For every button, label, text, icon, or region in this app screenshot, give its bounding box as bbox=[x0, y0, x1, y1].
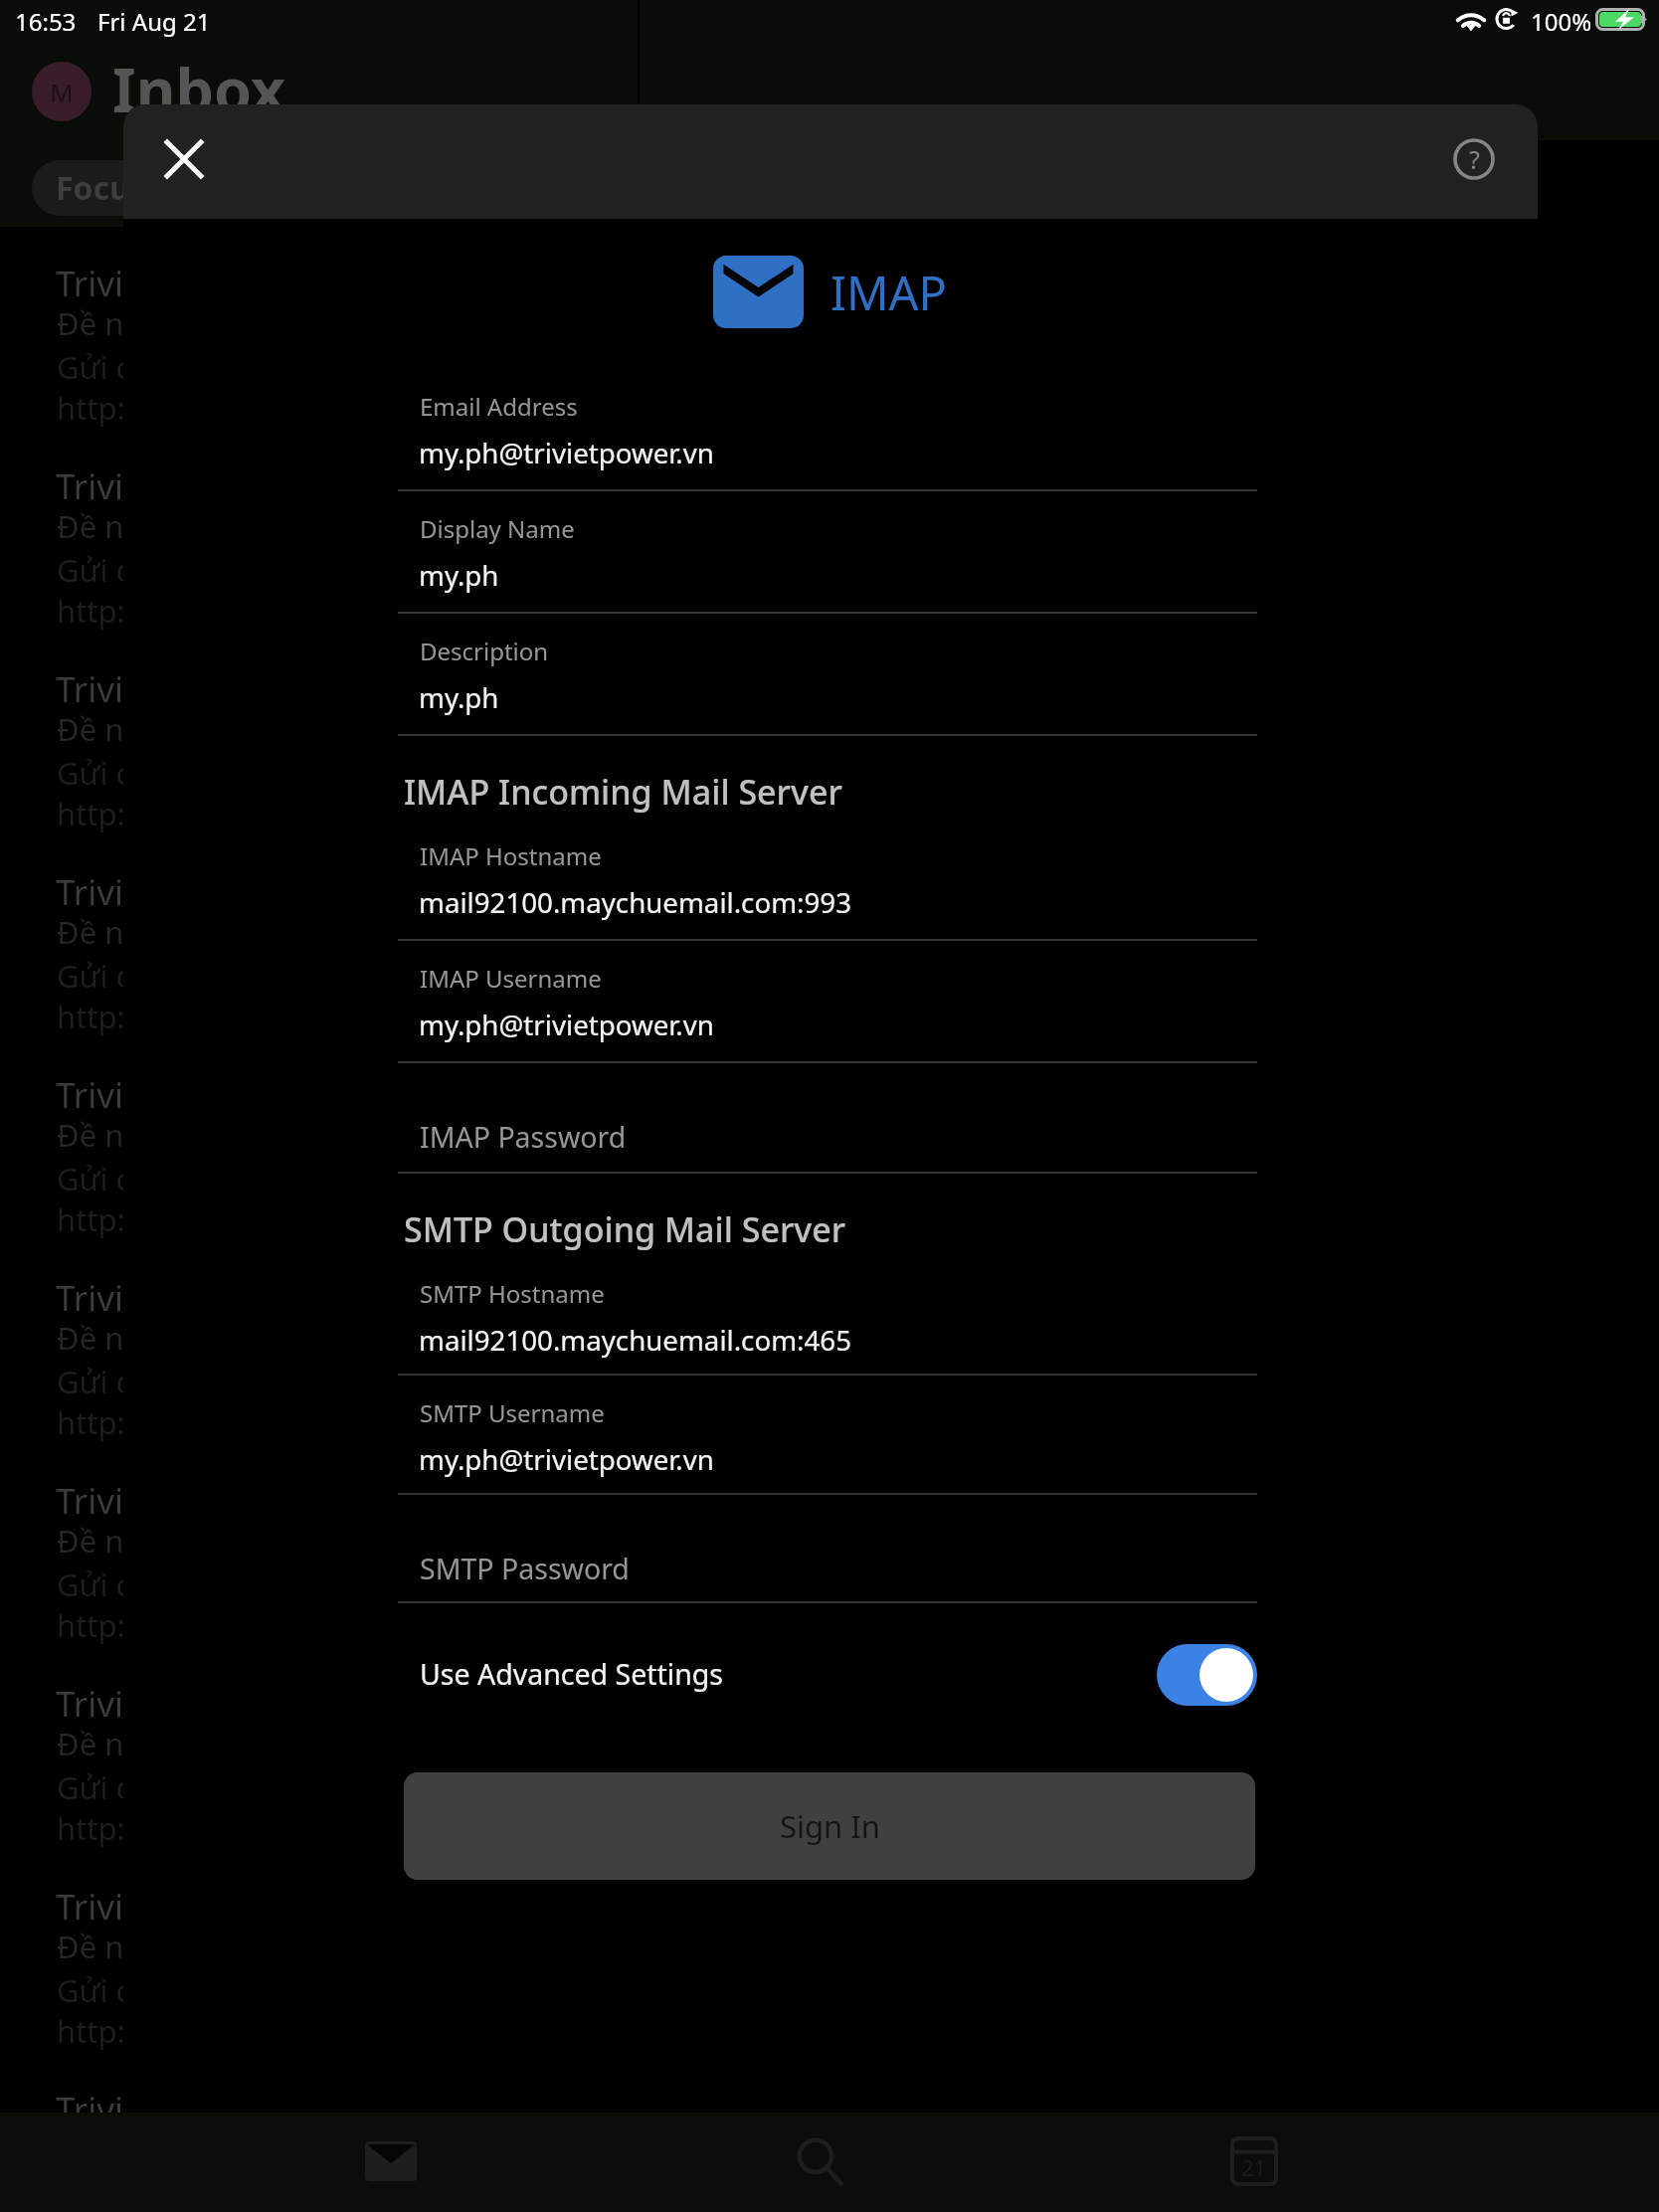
staticText: Gửi các đối tác, Quý công ty bbox=[57, 1564, 458, 1605]
button[interactable]: SMTP Hostname bbox=[398, 1256, 1257, 1374]
staticText: Trivietpower bbox=[56, 462, 260, 510]
button[interactable]: Focused bbox=[32, 160, 253, 216]
staticText: Trivietpower bbox=[56, 1477, 260, 1525]
staticText: http://trivietpower.vn bbox=[57, 387, 362, 429]
staticText: Trivietpower bbox=[56, 665, 260, 713]
staticText: http://trivietpower.vn bbox=[57, 793, 362, 834]
staticText: Đề nghị báo giá thiết bị điện bbox=[57, 1926, 466, 1967]
button[interactable]: SMTP Username bbox=[398, 1376, 1257, 1493]
staticText: http://trivietpower.vn bbox=[57, 590, 362, 632]
staticText: my.ph@trivietpower.vn bbox=[419, 1440, 714, 1478]
staticText: http://trivietpower.vn bbox=[57, 1401, 362, 1443]
staticText: Display Name bbox=[420, 512, 575, 545]
staticText: SMTP Hostname bbox=[420, 1277, 605, 1310]
staticText: Đề nghị báo giá thiết bị điện bbox=[57, 1520, 466, 1562]
staticText: Đề nghị báo giá thiết bị điện bbox=[57, 911, 466, 953]
staticText: Trivietpower bbox=[56, 260, 260, 307]
staticText: M bbox=[50, 75, 74, 109]
staticText: http://trivietpower.vn bbox=[57, 996, 362, 1037]
staticText: 16:53 bbox=[15, 5, 77, 38]
staticText: Trivietpower bbox=[56, 1883, 260, 1931]
staticText: Trivietpower bbox=[56, 1680, 260, 1728]
staticText: my.ph@trivietpower.vn bbox=[419, 1006, 714, 1043]
staticText: Đề nghị báo giá thiết bị điện bbox=[57, 505, 466, 547]
button[interactable]: Help bbox=[1438, 123, 1510, 195]
staticText: Focused bbox=[56, 166, 186, 210]
staticText: Sign In bbox=[780, 1805, 880, 1847]
button[interactable]: SMTP Password bbox=[398, 1495, 1257, 1601]
staticText: Đề nghị báo giá thiết bị điện bbox=[57, 1723, 466, 1764]
staticText: mail92100.maychuemail.com:465 bbox=[419, 1321, 851, 1359]
button[interactable]: Calendar bbox=[1199, 2107, 1309, 2212]
button[interactable]: Mail bbox=[336, 2107, 446, 2212]
staticText: Gửi các đối tác, Quý công ty bbox=[57, 1969, 458, 2011]
staticText: Trivietpower bbox=[56, 868, 260, 916]
staticText: Đề nghị báo giá thiết bị điện bbox=[57, 708, 466, 750]
staticText: http://trivietpower.vn bbox=[57, 1604, 362, 1646]
staticText: Gửi các đối tác, Quý công ty bbox=[57, 752, 458, 794]
button[interactable]: Close bbox=[148, 123, 220, 195]
staticText: Gửi các đối tác, Quý công ty bbox=[57, 346, 458, 388]
staticText: IMAP Hostname bbox=[420, 839, 602, 872]
button[interactable]: IMAP Hostname bbox=[398, 819, 1257, 939]
staticText: Đề nghị báo giá thiết bị điện bbox=[57, 2128, 466, 2170]
staticText: Gửi các đối tác, Quý công ty bbox=[57, 549, 458, 591]
staticText: IMAP Password bbox=[420, 1118, 627, 1157]
staticText: Trivietpower bbox=[56, 1274, 260, 1322]
staticText: http://trivietpower.vn bbox=[57, 2010, 362, 2052]
button[interactable]: Description bbox=[398, 614, 1257, 734]
staticText: Đề nghị báo giá thiết bị điện bbox=[57, 302, 466, 344]
staticText: Đề nghị báo giá thiết bị điện bbox=[57, 1114, 466, 1156]
staticText: Gửi các đối tác, Quý công ty bbox=[57, 2172, 458, 2212]
staticText: Gửi các đối tác, Quý công ty bbox=[57, 1158, 458, 1199]
button[interactable]: Display Name bbox=[398, 491, 1257, 612]
staticText: Email Address bbox=[420, 390, 578, 423]
staticText: IMAP Incoming Mail Server bbox=[404, 769, 842, 815]
staticText: mail92100.maychuemail.com:993 bbox=[419, 883, 851, 921]
staticText: 21 bbox=[1241, 2152, 1267, 2182]
staticText: http://trivietpower.vn bbox=[57, 1807, 362, 1849]
button[interactable]: Use Advanced Settings toggle bbox=[1157, 1644, 1257, 1706]
staticText: SMTP Outgoing Mail Server bbox=[404, 1206, 846, 1252]
staticText: ? bbox=[1469, 142, 1480, 176]
staticText: my.ph@trivietpower.vn bbox=[419, 434, 714, 471]
staticText: Gửi các đối tác, Quý công ty bbox=[57, 1766, 458, 1808]
staticText: Trivietpower bbox=[56, 1071, 260, 1119]
staticText: Trivietpower bbox=[56, 2086, 260, 2133]
staticText: IMAP Username bbox=[420, 962, 602, 995]
button[interactable]: Search bbox=[765, 2107, 874, 2212]
staticText: Fri Aug 21 bbox=[97, 5, 211, 38]
staticText: Description bbox=[420, 635, 549, 667]
button[interactable]: IMAP Password bbox=[398, 1063, 1257, 1172]
staticText: Inbox bbox=[112, 48, 286, 130]
staticText: 100% bbox=[1531, 5, 1592, 38]
staticText: SMTP Password bbox=[420, 1550, 630, 1588]
button[interactable]: IMAP Username bbox=[398, 941, 1257, 1061]
button[interactable]: Use Advanced Settings bbox=[398, 1603, 1257, 1746]
staticText: SMTP Username bbox=[420, 1396, 605, 1429]
staticText: my.ph bbox=[419, 678, 499, 716]
staticText: Đề nghị báo giá thiết bị điện bbox=[57, 1317, 466, 1359]
staticText: Gửi các đối tác, Quý công ty bbox=[57, 1361, 458, 1402]
button[interactable]: Email Address bbox=[398, 369, 1257, 489]
staticText: Use Advanced Settings bbox=[420, 1655, 723, 1694]
staticText: IMAP bbox=[830, 261, 948, 324]
staticText: my.ph bbox=[419, 556, 499, 594]
button[interactable]: Sign In bbox=[404, 1772, 1255, 1880]
staticText: http://trivietpower.vn bbox=[57, 1198, 362, 1240]
staticText: Gửi các đối tác, Quý công ty bbox=[57, 955, 458, 997]
